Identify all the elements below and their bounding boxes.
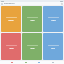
button[interactable]: Home bbox=[10, 61, 13, 64]
button[interactable]: Mind bbox=[43, 33, 63, 60]
button[interactable]: Heart bbox=[1, 33, 21, 60]
staticText: Dashboard bbox=[4, 2, 15, 5]
button[interactable]: More bbox=[51, 61, 54, 64]
button[interactable]: Energy bbox=[1, 6, 21, 32]
staticText: Sleep bbox=[30, 47, 35, 49]
staticText: Water bbox=[51, 19, 56, 21]
button[interactable]: Profile bbox=[37, 61, 40, 64]
staticText: Energy bbox=[8, 19, 14, 21]
button[interactable]: Sleep bbox=[22, 33, 42, 60]
staticText: Heart bbox=[9, 47, 14, 49]
button[interactable]: Steps bbox=[22, 6, 42, 32]
button[interactable]: Activity bbox=[24, 61, 27, 64]
staticText: Mind bbox=[51, 47, 55, 49]
button[interactable]: Search bbox=[61, 3, 63, 5]
staticText: Steps bbox=[30, 19, 35, 21]
button[interactable]: Water bbox=[43, 6, 63, 32]
